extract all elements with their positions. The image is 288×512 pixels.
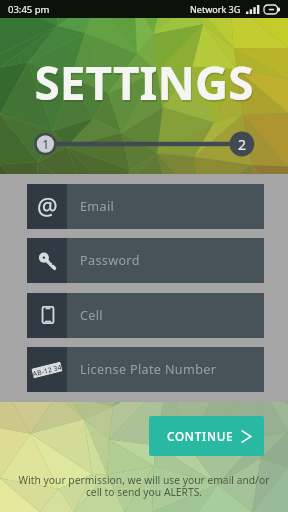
- staticText: With your permission, we will use your e…: [0, 473, 288, 487]
- button[interactable]: @: [27, 184, 264, 229]
- staticText: 1: [42, 135, 50, 153]
- button[interactable]: Step 1: [34, 128, 57, 160]
- staticText: @: [37, 190, 58, 221]
- button[interactable]: Password: [27, 238, 264, 283]
- staticText: AB-12 34: [31, 362, 63, 378]
- button[interactable]: AB-12 34: [27, 347, 264, 392]
- staticText: SETTINGS: [0, 51, 288, 114]
- staticText: Cell: [80, 307, 103, 324]
- staticText: cell to send you ALERTS.: [0, 485, 288, 499]
- staticText: 03:45 pm: [8, 3, 50, 16]
- staticText: SETTINGS: [1, 53, 288, 116]
- button[interactable]: CONTINUE: [149, 416, 264, 456]
- button[interactable]: Cell: [27, 293, 264, 338]
- button[interactable]: Step 2: [230, 128, 254, 160]
- staticText: Network 3G: [190, 3, 241, 15]
- staticText: Email: [80, 198, 115, 215]
- staticText: CONTINUE: [167, 428, 234, 444]
- staticText: Password: [80, 252, 140, 269]
- staticText: License Plate Number: [80, 361, 217, 378]
- staticText: 2: [238, 135, 247, 154]
